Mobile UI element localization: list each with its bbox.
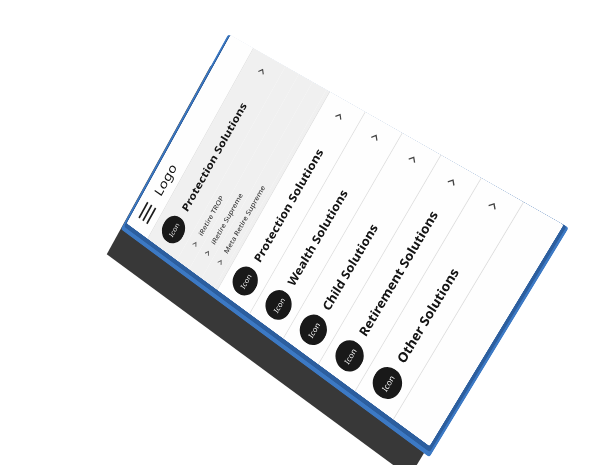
staticText: Icon [341,345,359,366]
button[interactable]: iRetire TROP [177,66,299,269]
staticText: Meta Retire Supreme [221,183,267,255]
staticText: Logo [150,160,181,199]
staticText: Icon [238,271,254,291]
staticText: Icon [379,372,397,394]
staticText: Icon [167,220,181,239]
staticText: Retirement Solutions [355,182,457,340]
staticText: Other Solutions [393,206,498,367]
button[interactable]: Icon [355,178,523,419]
staticText: Icon [271,295,287,315]
staticText: Protection Solutions [178,72,265,214]
staticText: iRetire TROP [196,193,225,237]
staticText: Wealth Solutions [284,138,380,289]
button[interactable]: Icon [319,155,481,391]
staticText: Child Solutions [318,159,417,314]
button[interactable]: Icon [148,48,285,260]
staticText: Icon [305,319,322,340]
button[interactable]: Icon [284,133,441,364]
staticText: Protection Solutions [250,117,343,265]
button[interactable]: Icon [218,92,365,313]
button[interactable]: iRetire Supreme [189,74,313,278]
button[interactable]: Meta Retire Supreme [202,82,326,288]
staticText: iRetire Supreme [209,190,245,246]
button[interactable]: Icon [250,112,402,338]
button[interactable]: Open navigation menu [133,197,161,229]
